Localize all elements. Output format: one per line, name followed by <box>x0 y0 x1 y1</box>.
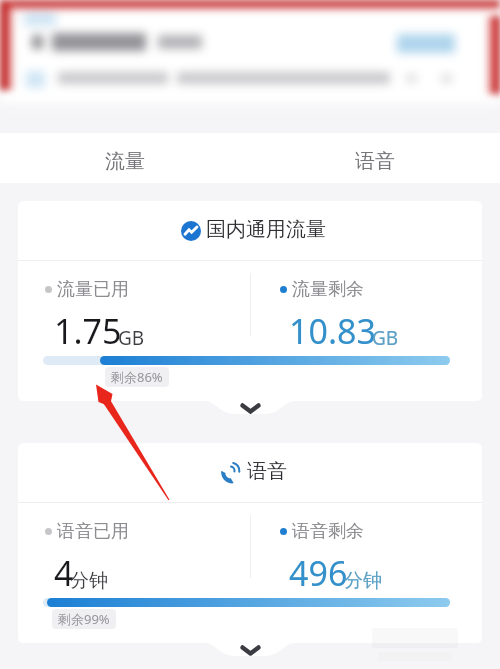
button[interactable]: 展开 <box>220 401 280 415</box>
staticText: 10.83 <box>289 308 376 354</box>
staticText: GB <box>372 325 399 351</box>
button[interactable]: 国内通用流量 <box>0 201 500 260</box>
staticText: 流量剩余 <box>292 278 364 301</box>
staticText: 4 <box>54 550 74 596</box>
staticText: 1.75 <box>54 308 122 354</box>
staticText: 流量 <box>105 149 145 174</box>
staticText: 国内通用流量 <box>206 217 326 242</box>
staticText: 语音已用 <box>57 520 129 543</box>
button[interactable]: 语音 <box>250 133 500 183</box>
staticText: 分钟 <box>70 569 108 593</box>
staticText: 剩余99% <box>58 610 110 628</box>
button[interactable]: 语音 <box>0 443 500 502</box>
staticText: 语音 <box>355 149 395 174</box>
button[interactable]: 流量 <box>0 133 250 183</box>
staticText: 分钟 <box>344 569 382 593</box>
staticText: 语音 <box>247 459 287 484</box>
staticText: 496 <box>289 550 348 596</box>
staticText: 语音剩余 <box>292 520 364 543</box>
staticText: 剩余86% <box>111 368 163 386</box>
staticText: 流量已用 <box>57 278 129 301</box>
button[interactable]: 展开 <box>220 643 280 657</box>
staticText: GB <box>118 325 145 351</box>
